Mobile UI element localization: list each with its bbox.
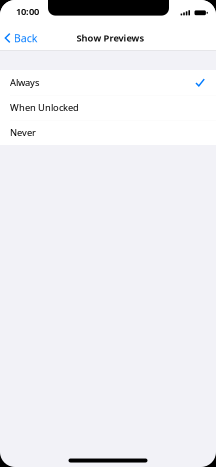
button[interactable]: Never bbox=[0, 120, 216, 145]
staticText: Never bbox=[10, 126, 36, 139]
staticText: 10:00 bbox=[16, 5, 39, 18]
staticText: Always bbox=[10, 76, 39, 89]
staticText: When Unlocked bbox=[10, 101, 79, 114]
staticText: Back bbox=[14, 31, 38, 45]
button[interactable]: Back bbox=[0, 26, 43, 50]
button[interactable]: When Unlocked bbox=[0, 95, 216, 120]
staticText: Show Previews bbox=[76, 32, 144, 44]
button[interactable]: Always bbox=[0, 70, 216, 95]
